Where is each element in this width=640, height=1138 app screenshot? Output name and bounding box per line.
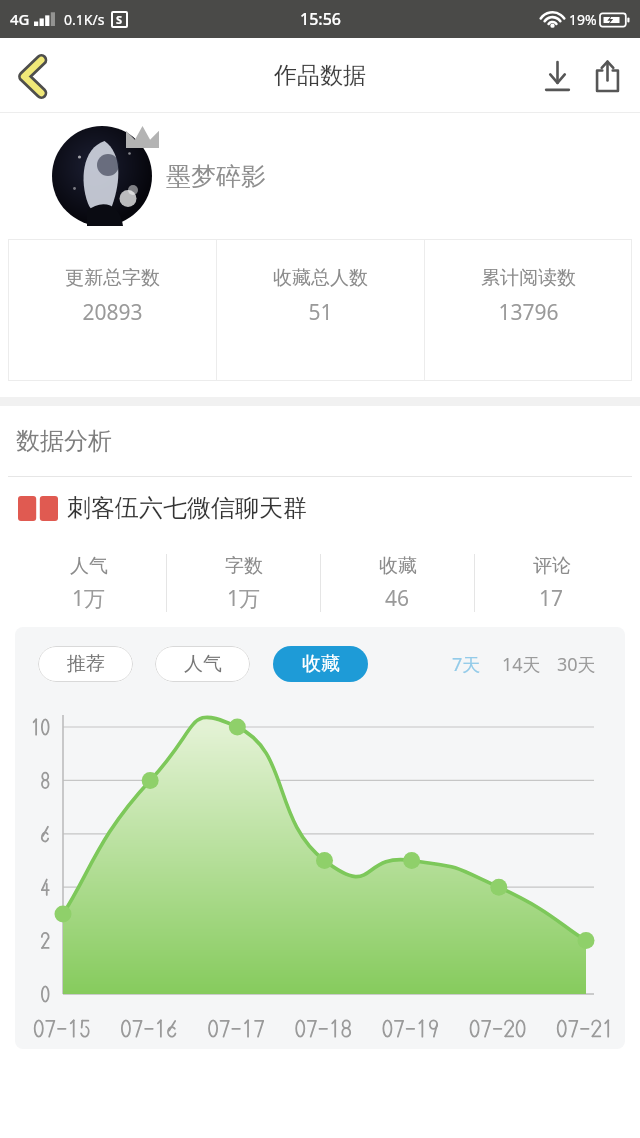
button[interactable]: Back <box>6 50 58 102</box>
button[interactable]: 更新总字数 <box>8 239 216 381</box>
staticText: 人气 <box>70 554 108 578</box>
button[interactable]: 14天 <box>500 647 543 682</box>
button[interactable]: 人气 <box>155 646 250 682</box>
staticText: 51 <box>308 298 333 327</box>
staticText: 30天 <box>557 652 596 677</box>
button[interactable]: 收藏 <box>273 646 368 682</box>
staticText: 19% <box>569 10 597 29</box>
staticText: 评论 <box>533 554 571 578</box>
staticText: 15:56 <box>300 8 341 30</box>
staticText: 收藏 <box>302 652 340 676</box>
button[interactable]: 收藏总人数 <box>217 239 424 381</box>
staticText: 收藏 <box>379 554 417 578</box>
staticText: 收藏总人数 <box>273 266 368 290</box>
button[interactable]: 推荐 <box>38 646 133 682</box>
button[interactable]: 刺客伍六七微信聊天群 <box>0 477 640 539</box>
staticText: 推荐 <box>67 652 105 676</box>
staticText: 累计阅读数 <box>481 266 576 290</box>
staticText: 17 <box>539 584 564 613</box>
button[interactable]: 7天 <box>450 647 483 682</box>
button[interactable]: 累计阅读数 <box>425 239 632 381</box>
staticText: 46 <box>385 584 410 613</box>
staticText: 更新总字数 <box>65 266 160 290</box>
staticText: 13796 <box>498 298 559 327</box>
staticText: 数据分析 <box>16 426 112 456</box>
staticText: 人气 <box>184 652 222 676</box>
button[interactable]: Share <box>582 51 632 101</box>
button[interactable]: Download <box>532 51 582 101</box>
staticText: S <box>116 12 123 27</box>
staticText: 1万 <box>227 584 261 613</box>
staticText: 7天 <box>452 652 481 677</box>
staticText: 刺客伍六七微信聊天群 <box>67 493 307 523</box>
staticText: 字数 <box>225 554 263 578</box>
button[interactable]: 人气 <box>12 539 166 627</box>
staticText: 墨梦碎影 <box>166 161 266 192</box>
staticText: 0.1K/s <box>64 10 105 29</box>
staticText: 1万 <box>72 584 106 613</box>
button[interactable]: 墨梦碎影 <box>0 113 640 239</box>
button[interactable]: 评论 <box>475 539 628 627</box>
staticText: 14天 <box>502 652 541 677</box>
button[interactable]: 收藏 <box>321 539 474 627</box>
staticText: 4G <box>10 9 30 29</box>
button[interactable]: 30天 <box>555 647 598 682</box>
button[interactable]: 字数 <box>167 539 320 627</box>
staticText: 20893 <box>82 298 143 327</box>
staticText: 作品数据 <box>274 61 366 90</box>
